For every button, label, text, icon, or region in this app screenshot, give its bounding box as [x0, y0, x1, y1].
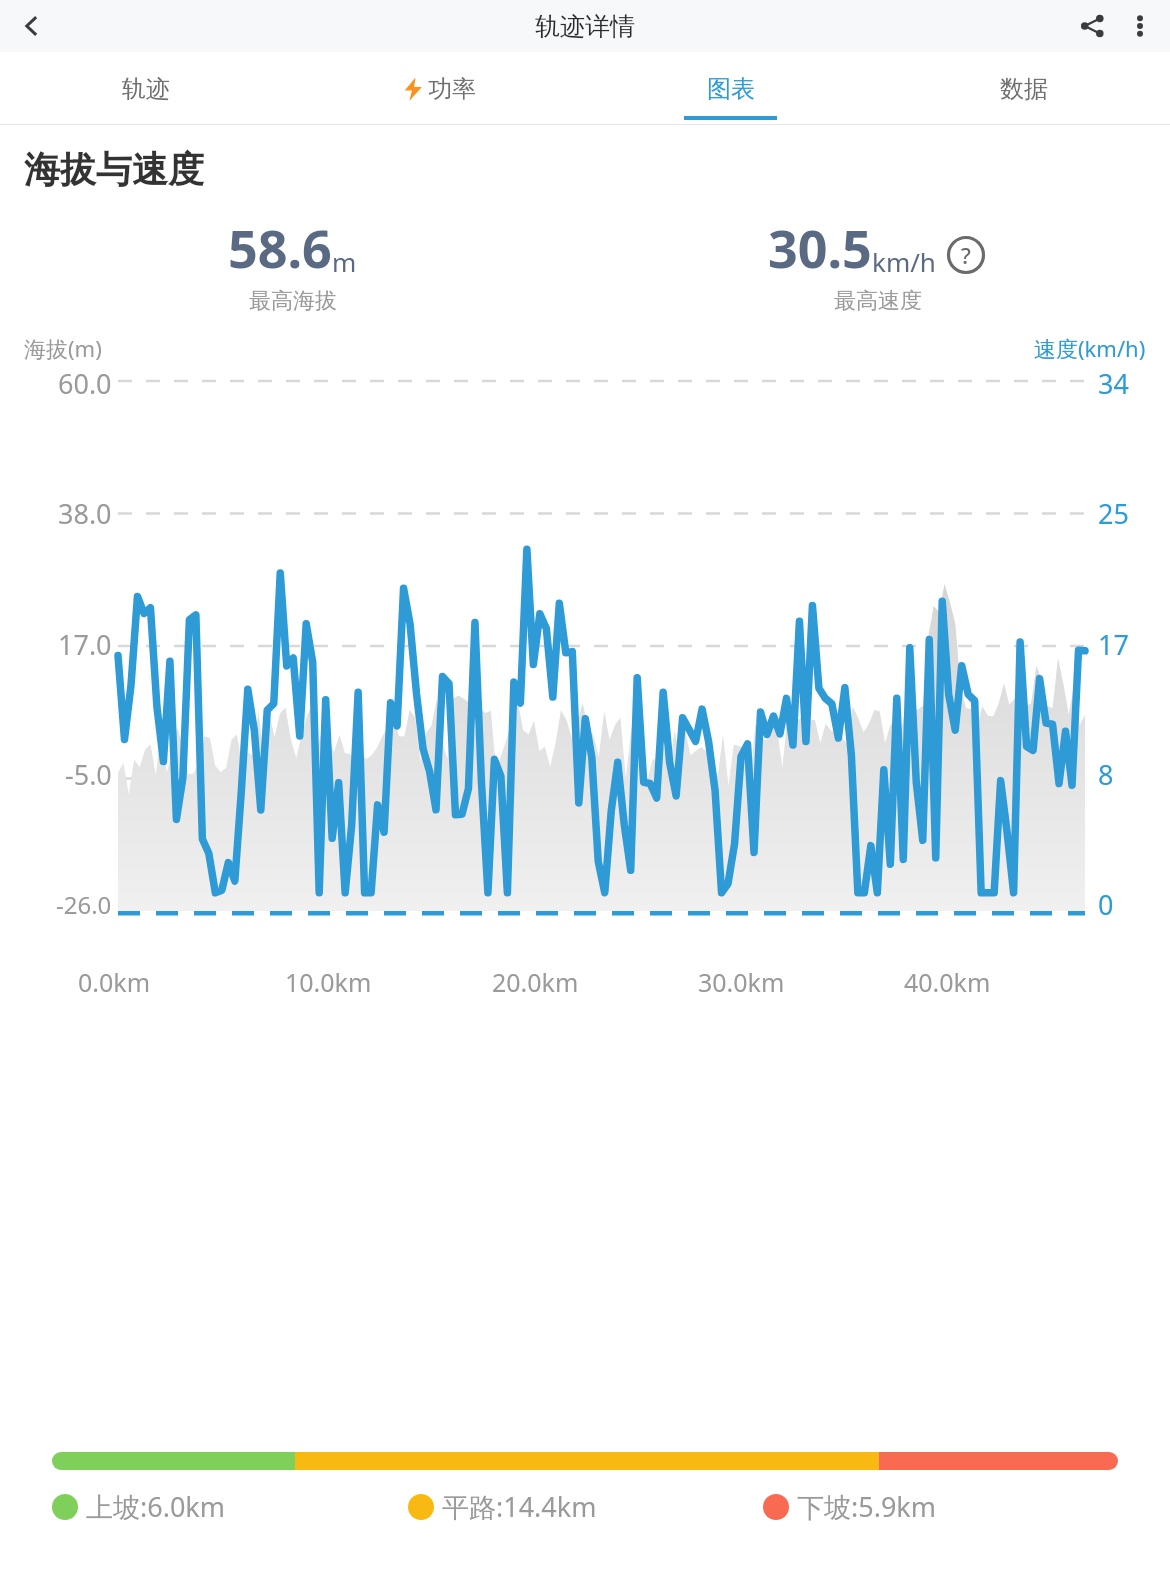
staticText: 60.0 — [58, 365, 112, 402]
staticText: 20.0km — [492, 965, 579, 999]
staticText: 10.0km — [285, 965, 372, 999]
staticText: 17.0 — [58, 626, 112, 663]
staticText: 海拔(m) — [24, 333, 102, 363]
button[interactable]: 图表 — [584, 52, 877, 125]
button[interactable]: Back — [8, 2, 56, 50]
staticText: 数据 — [1000, 74, 1048, 104]
staticText: 17 — [1098, 626, 1129, 663]
staticText: 速度(km/h) — [1034, 333, 1146, 363]
staticText: 25 — [1098, 495, 1129, 532]
staticText: 34 — [1098, 365, 1129, 402]
staticText: 0 — [1098, 886, 1114, 923]
staticText: 平路:14.4km — [442, 1488, 597, 1525]
button[interactable]: 平路:14.4km — [408, 1488, 763, 1525]
button[interactable]: More options — [1116, 2, 1164, 50]
staticText: 功率 — [428, 74, 476, 104]
staticText: 8 — [1098, 756, 1114, 793]
button[interactable]: Share — [1068, 2, 1116, 50]
button[interactable]: 上坡:6.0km — [52, 1488, 408, 1525]
staticText: 最高速度 — [834, 287, 922, 315]
button[interactable]: 功率 — [292, 52, 584, 125]
staticText: -5.0 — [65, 756, 112, 793]
staticText: ? — [961, 240, 971, 270]
staticText: 图表 — [707, 74, 755, 104]
staticText: -26.0 — [56, 888, 112, 921]
staticText: 上坡:6.0km — [86, 1488, 226, 1525]
staticText: 40.0km — [904, 965, 991, 999]
staticText: 30.0km — [698, 965, 785, 999]
staticText: 轨迹详情 — [535, 11, 635, 42]
staticText: 58.6 — [228, 212, 332, 283]
button[interactable]: 轨迹 — [0, 52, 292, 125]
staticText: m — [332, 244, 357, 279]
staticText: km/h — [872, 244, 936, 279]
button[interactable]: Help — [944, 233, 988, 277]
staticText: 最高海拔 — [249, 287, 337, 315]
staticText: 0.0km — [78, 965, 151, 999]
button[interactable]: 下坡:5.9km — [763, 1488, 1118, 1525]
button[interactable]: 数据 — [877, 52, 1170, 125]
staticText: 30.5 — [768, 212, 872, 283]
staticText: 轨迹 — [122, 74, 170, 104]
staticText: 海拔与速度 — [24, 147, 204, 192]
staticText: 下坡:5.9km — [797, 1488, 937, 1525]
staticText: 38.0 — [58, 495, 112, 532]
